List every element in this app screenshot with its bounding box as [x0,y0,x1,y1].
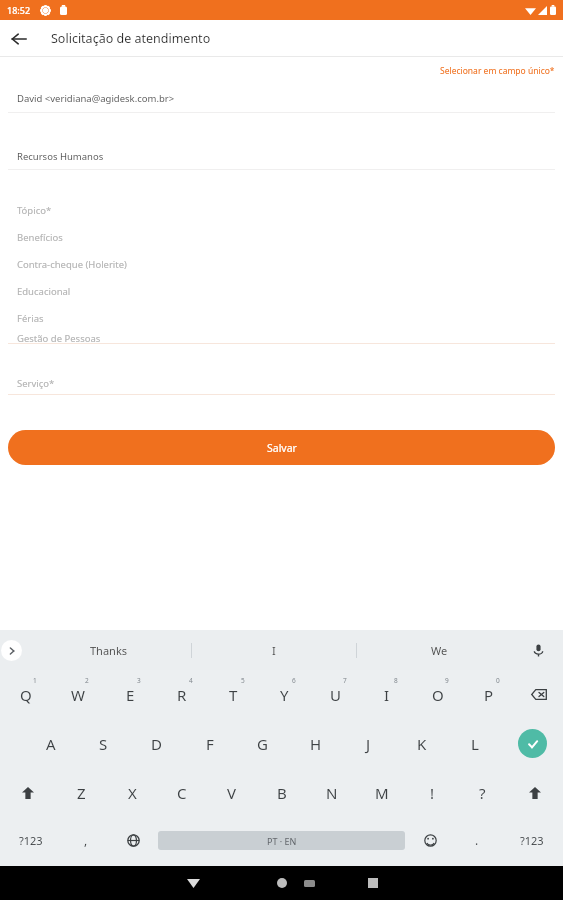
button[interactable]: Enter [501,719,563,768]
button[interactable]: C [157,768,207,817]
button[interactable]: Recursos Humanos [0,143,563,169]
button[interactable]: , [62,817,110,863]
button[interactable]: I [361,670,412,719]
staticText: Selecionar em campo único* [440,65,555,77]
button[interactable]: Benefícios [0,224,563,251]
button[interactable]: A [24,719,77,768]
button[interactable]: Backspace [514,670,563,719]
staticText: D [151,734,162,754]
staticText: Salvar [267,441,297,455]
staticText: 9 [445,676,449,685]
staticText: Tópico* [17,204,52,217]
button[interactable]: X [107,768,157,817]
button[interactable]: K [395,719,448,768]
button[interactable]: Voice input [525,637,551,663]
staticText: H [310,734,322,754]
button[interactable]: N [307,768,357,817]
button[interactable]: Shift [0,768,56,817]
button[interactable]: R [156,670,208,719]
staticText: We [431,643,448,658]
button[interactable]: We [357,630,521,670]
button[interactable]: Shift [507,768,563,817]
staticText: I [272,643,276,658]
button[interactable]: Salvar [8,430,555,465]
button[interactable]: Back [0,20,37,57]
button[interactable]: Hide keyboard [178,868,208,898]
button[interactable]: Home [267,868,297,898]
button[interactable]: P [463,670,514,719]
staticText: 3 [137,676,141,685]
button[interactable]: E [104,670,156,719]
button[interactable]: Tópico* [0,197,563,224]
staticText: 7 [343,676,347,685]
button[interactable]: More suggestions [1,640,22,661]
staticText: A [46,734,56,754]
button[interactable]: PT · EN [158,831,405,850]
button[interactable]: H [289,719,342,768]
staticText: Y [280,685,289,705]
button[interactable]: Q [0,670,52,719]
staticText: Educacional [17,285,71,298]
staticText: O [432,685,444,705]
button[interactable]: G [236,719,289,768]
staticText: 0 [496,676,500,685]
staticText: 6 [292,676,296,685]
staticText: I [384,685,390,705]
button[interactable]: Y [259,670,310,719]
staticText: N [326,783,338,803]
staticText: R [177,685,187,705]
staticText: T [229,685,238,705]
button[interactable]: Férias [0,305,563,332]
button[interactable]: Selecionar em campo único* [440,65,555,77]
staticText: K [417,734,427,754]
button[interactable]: David <veridiana@agidesk.com.br> [0,84,563,112]
button[interactable]: ? [457,768,507,817]
button[interactable]: ?123 [501,817,563,863]
button[interactable]: W [52,670,104,719]
staticText: P [484,685,494,705]
button[interactable]: M [357,768,407,817]
button[interactable]: S [77,719,130,768]
staticText: 8 [394,676,398,685]
button[interactable]: B [257,768,307,817]
staticText: PT · EN [267,835,297,847]
button[interactable]: Z [56,768,107,817]
button[interactable]: F [183,719,236,768]
staticText: B [277,783,287,803]
button[interactable]: Emoji [407,817,453,863]
button[interactable]: D [130,719,183,768]
button[interactable]: Serviço* [0,372,563,394]
staticText: M [375,783,389,803]
staticText: Q [20,685,32,705]
button[interactable]: J [342,719,395,768]
staticText: ?123 [520,833,544,848]
staticText: ! [430,783,435,803]
button[interactable]: Educacional [0,278,563,305]
staticText: . [475,832,479,848]
button[interactable]: Keyboard active [296,870,322,896]
staticText: ?123 [19,833,43,848]
staticText: Z [77,783,86,803]
button[interactable]: L [448,719,501,768]
staticText: 4 [189,676,193,685]
staticText: 5 [241,676,245,685]
button[interactable]: Change language [110,817,156,863]
staticText: Thanks [90,643,128,658]
button[interactable]: O [412,670,463,719]
staticText: 1 [33,676,37,685]
staticText: E [126,685,135,705]
button[interactable]: Recents [358,868,388,898]
button[interactable]: I [192,630,356,670]
button[interactable]: ?123 [0,817,62,863]
staticText: 2 [85,676,89,685]
button[interactable]: U [310,670,361,719]
staticText: ? [479,783,486,803]
staticText: Férias [17,312,44,325]
button[interactable]: Contra-cheque (Holerite) [0,251,563,278]
button[interactable]: T [208,670,259,719]
button[interactable]: ! [407,768,457,817]
button[interactable]: . [453,817,501,863]
button[interactable]: Thanks [26,630,191,670]
button[interactable]: Gestão de Pessoas [0,332,563,343]
button[interactable]: V [207,768,257,817]
